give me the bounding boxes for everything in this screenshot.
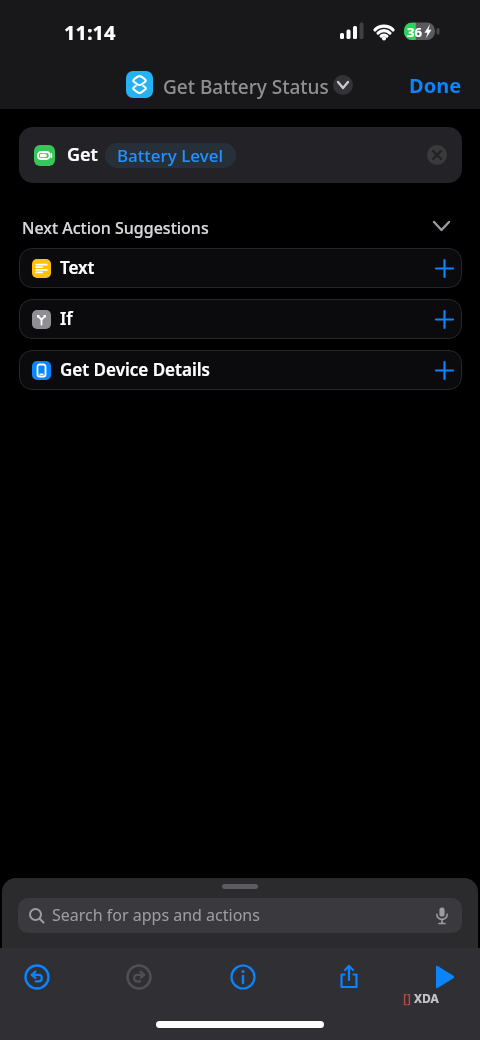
button[interactable]: Battery Level [105, 143, 236, 168]
button[interactable]: Search for apps and actions [18, 898, 462, 933]
staticText: Text [60, 256, 95, 279]
button[interactable]: If [19, 299, 462, 339]
button[interactable] [427, 145, 447, 165]
button[interactable] [14, 955, 60, 999]
staticText: XDA [414, 990, 439, 1006]
staticText: Get Battery Status [163, 74, 329, 100]
staticText: Get Device Details [60, 358, 210, 381]
button[interactable] [116, 955, 162, 999]
staticText: Done [409, 72, 462, 99]
staticText: Get [67, 142, 98, 167]
staticText: If [60, 307, 73, 330]
button[interactable] [326, 955, 372, 999]
button[interactable] [220, 955, 266, 999]
button[interactable]: Get [19, 127, 462, 183]
button[interactable]: Text [19, 248, 462, 288]
button[interactable] [333, 75, 353, 95]
staticText: 36 [407, 23, 422, 41]
staticText: 11:14 [64, 19, 116, 46]
button[interactable] [421, 955, 467, 999]
staticText: Battery Level [117, 144, 224, 167]
staticText: [] [403, 990, 411, 1006]
button[interactable]: Get Device Details [19, 350, 462, 390]
staticText: Next Action Suggestions [22, 217, 209, 239]
button[interactable] [126, 71, 153, 98]
staticText: Search for apps and actions [52, 904, 260, 926]
button[interactable]: Done [400, 68, 470, 102]
